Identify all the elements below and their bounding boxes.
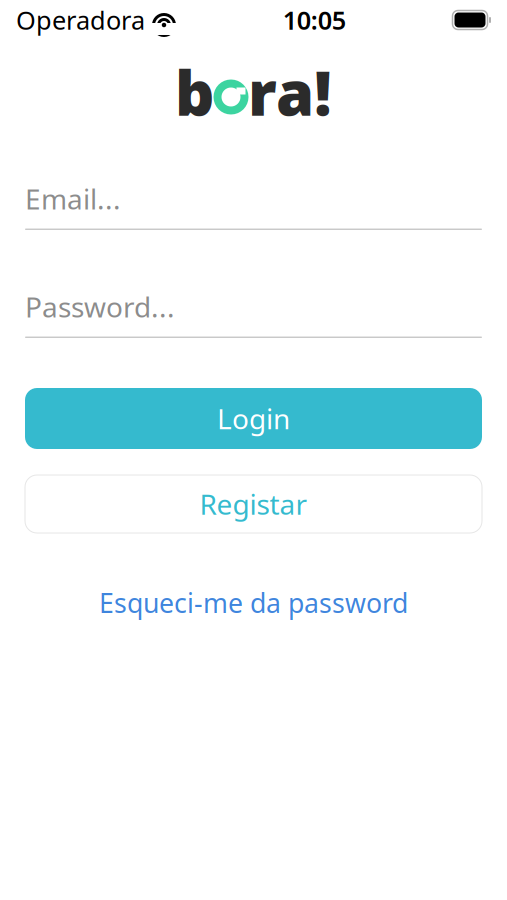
- staticText: Password...: [25, 288, 175, 325]
- staticText: Email...: [25, 180, 121, 217]
- staticText: Registar: [199, 485, 307, 523]
- button[interactable]: Esqueci-me da password: [85, 577, 422, 628]
- staticText: Esqueci-me da password: [99, 585, 408, 620]
- button[interactable]: Registar: [25, 475, 482, 533]
- staticText: Operadora: [16, 3, 145, 37]
- staticText: b: [175, 51, 214, 133]
- staticText: Login: [217, 400, 290, 437]
- staticText: ra!: [248, 51, 332, 133]
- button[interactable]: Login: [25, 388, 482, 449]
- staticText: 10:05: [283, 3, 346, 37]
